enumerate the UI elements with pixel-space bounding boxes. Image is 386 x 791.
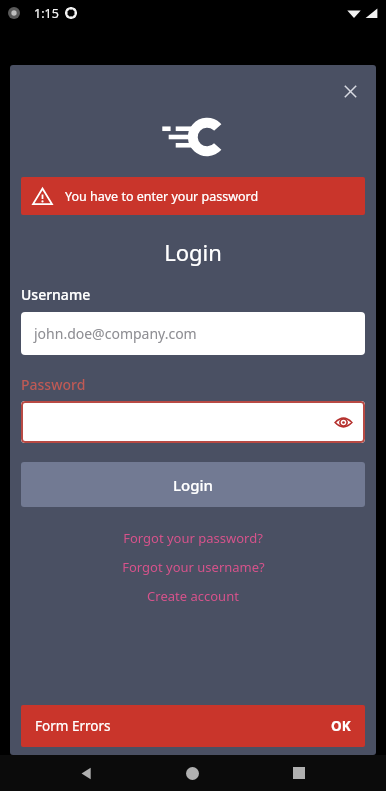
button[interactable]: OK xyxy=(331,717,351,735)
button[interactable]: You have to enter your password xyxy=(21,177,365,215)
staticText: Login xyxy=(173,475,213,495)
staticText: john.doe@company.com xyxy=(34,324,197,343)
button[interactable]: Form Errors xyxy=(21,705,365,747)
staticText: You have to enter your password xyxy=(65,188,259,205)
button[interactable]: Forgot your username? xyxy=(10,558,376,576)
button[interactable]: Show password xyxy=(21,401,365,443)
button[interactable]: Recents xyxy=(279,755,319,791)
staticText: 1:15 xyxy=(34,5,59,22)
button[interactable]: Create account xyxy=(10,587,376,605)
button[interactable]: Close xyxy=(330,71,370,111)
staticText: Username xyxy=(21,285,91,304)
button[interactable]: Home xyxy=(172,755,212,791)
staticText: Forgot your password? xyxy=(123,529,263,547)
staticText: Create account xyxy=(147,587,239,605)
button[interactable]: Back xyxy=(66,755,106,791)
button[interactable]: Show password xyxy=(325,404,361,440)
staticText: Forgot your username? xyxy=(122,558,265,576)
staticText: Password xyxy=(21,375,86,394)
button[interactable]: Login xyxy=(21,462,365,507)
staticText: Login xyxy=(164,237,222,267)
staticText: OK xyxy=(331,717,351,735)
staticText: Form Errors xyxy=(35,717,111,735)
button[interactable]: john.doe@company.com xyxy=(21,312,365,355)
button[interactable]: Forgot your password? xyxy=(10,529,376,547)
